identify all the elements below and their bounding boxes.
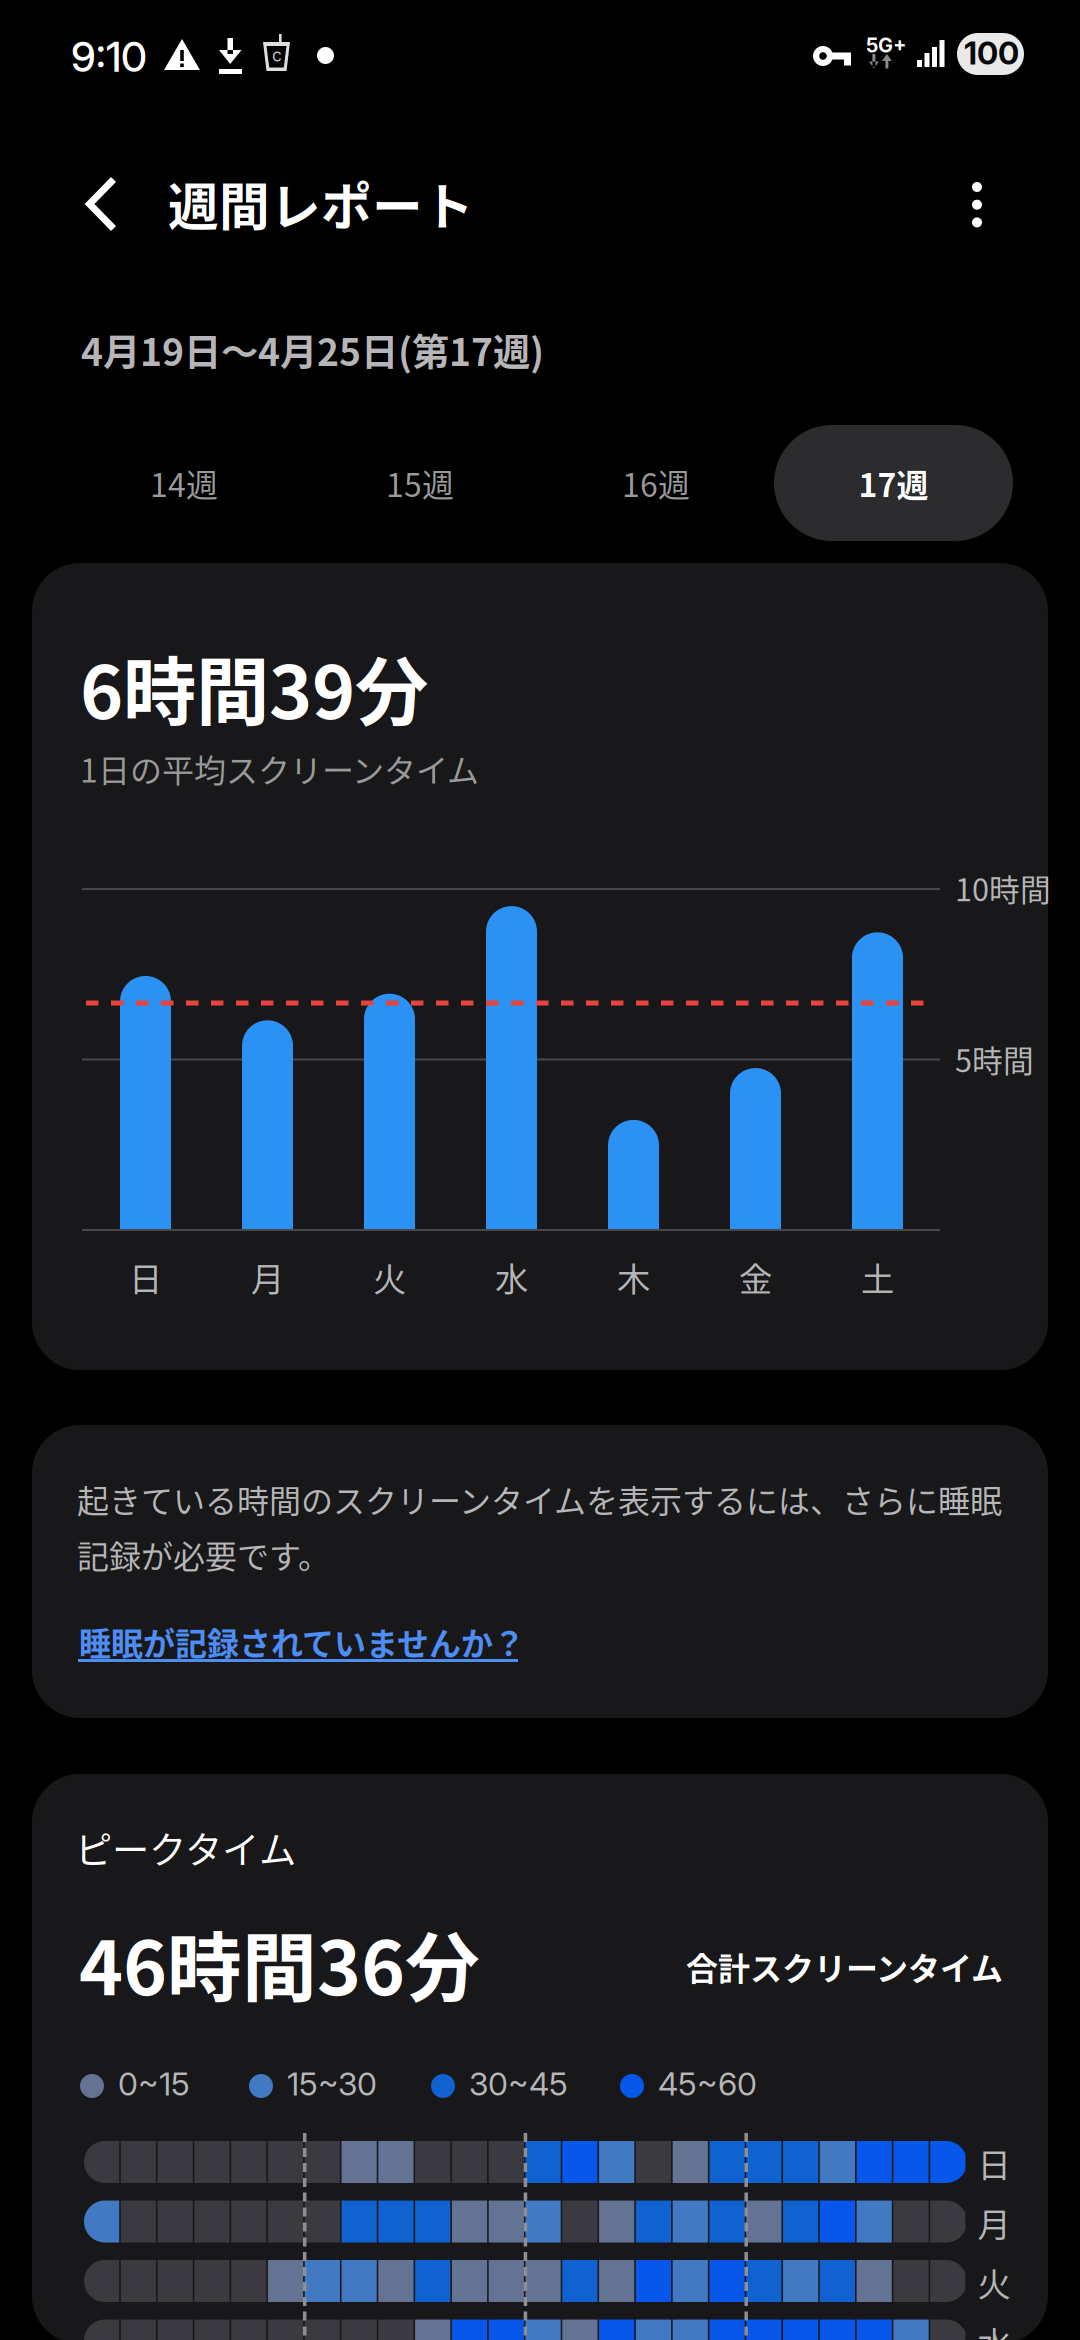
staticText: 木: [617, 1253, 650, 1301]
staticText: 5G+: [866, 33, 907, 57]
staticText: 火: [977, 2258, 1010, 2306]
staticText: 土: [861, 1253, 894, 1301]
staticText: 火: [373, 1253, 406, 1301]
staticText: 17週: [858, 460, 928, 506]
staticText: 4月19日〜4月25日(第17週): [81, 323, 544, 377]
button[interactable]: Back: [42, 145, 160, 263]
staticText: 16週: [622, 460, 690, 506]
staticText: 15~30: [287, 2064, 377, 2103]
staticText: 週間レポート: [168, 167, 474, 240]
staticText: 45~60: [658, 2064, 757, 2103]
button[interactable]: 15週: [302, 425, 538, 541]
staticText: 15週: [386, 460, 454, 506]
staticText: 10時間: [955, 866, 1051, 910]
staticText: c: [272, 45, 282, 66]
staticText: 5時間: [955, 1037, 1034, 1081]
staticText: 合計スクリーンタイム: [686, 1943, 1003, 1990]
staticText: 日: [977, 2139, 1010, 2187]
staticText: 金: [739, 1253, 772, 1301]
button[interactable]: 17週: [774, 425, 1013, 541]
staticText: 起きている時間のスクリーンタイムを表示するには、さらに睡眠記録が必要です。: [77, 1476, 1002, 1578]
staticText: 月: [977, 2198, 1010, 2247]
staticText: 月: [251, 1253, 284, 1301]
staticText: 14週: [150, 460, 218, 506]
staticText: 100: [964, 33, 1019, 72]
staticText: 水: [495, 1253, 528, 1301]
staticText: 30~45: [469, 2064, 568, 2103]
staticText: 睡眠が記録されていませんか？: [79, 1618, 525, 1665]
staticText: 0~15: [118, 2064, 190, 2103]
button[interactable]: 16週: [538, 425, 774, 541]
staticText: 1日の平均スクリーンタイム: [80, 745, 479, 792]
staticText: 水: [977, 2317, 1010, 2340]
staticText: 46時間36分: [79, 1909, 480, 2017]
staticText: 日: [129, 1253, 162, 1301]
button[interactable]: 14週: [66, 425, 302, 541]
button[interactable]: More options: [917, 146, 1035, 264]
staticText: ピークタイム: [75, 1821, 296, 1875]
button[interactable]: 睡眠が記録されていませんか？: [78, 1625, 528, 1677]
staticText: 9:10: [71, 32, 147, 82]
staticText: 6時間39分: [80, 634, 428, 740]
